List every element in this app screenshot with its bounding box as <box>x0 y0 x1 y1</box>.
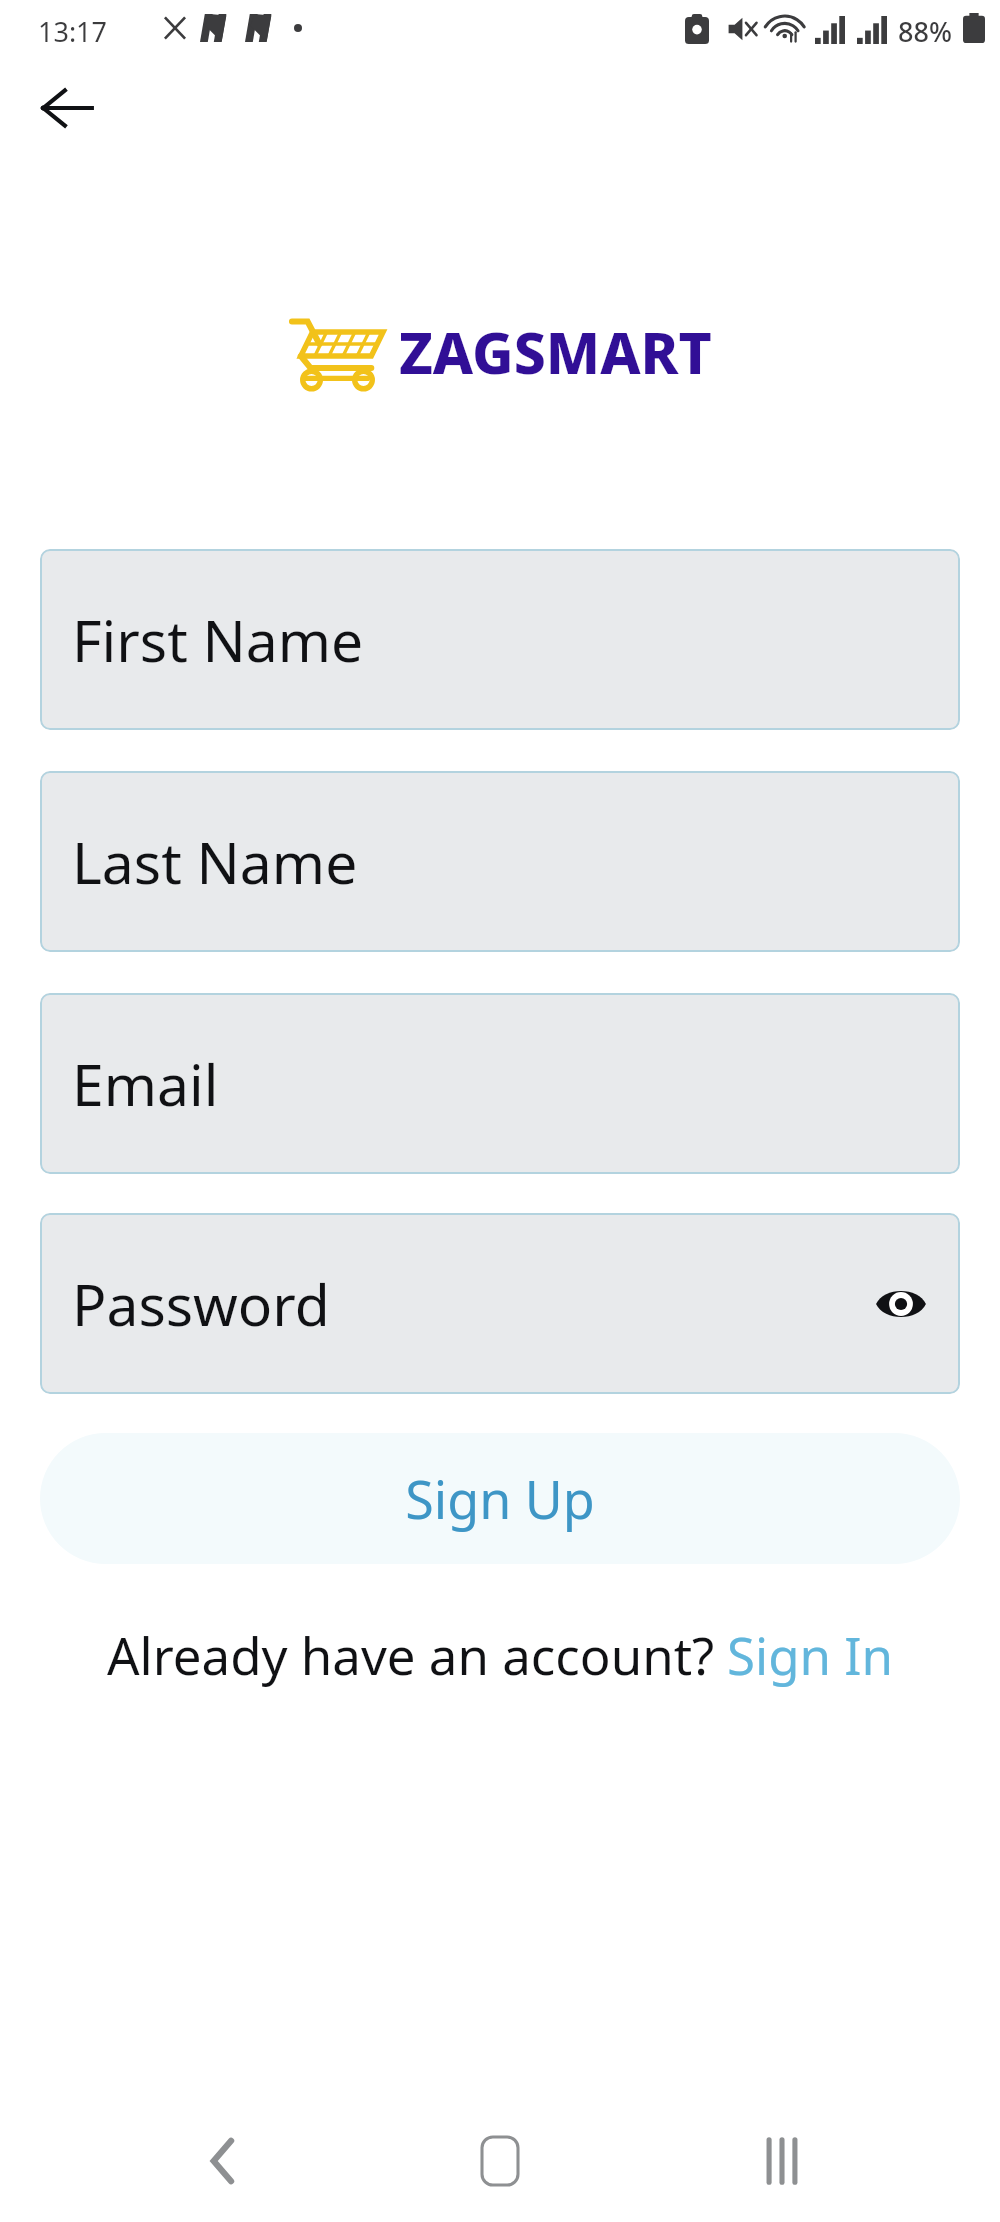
staticText: Password <box>72 1265 330 1343</box>
button[interactable]: Sign Up <box>40 1433 960 1564</box>
button[interactable]: Last Name <box>40 771 960 952</box>
button[interactable]: Show password <box>868 1271 934 1337</box>
staticText: Sign Up <box>405 1463 595 1534</box>
button[interactable]: First Name <box>40 549 960 730</box>
button[interactable]: Password <box>40 1213 960 1394</box>
staticText: 88% <box>898 13 952 50</box>
staticText: Last Name <box>72 823 358 901</box>
button[interactable]: Email <box>40 993 960 1174</box>
staticText: ZAGSMART <box>399 313 712 391</box>
staticText: 13:17 <box>38 13 108 50</box>
button[interactable]: Back <box>22 64 112 152</box>
button[interactable]: Recent apps <box>727 2106 837 2216</box>
button[interactable]: Sign In <box>727 1620 894 1689</box>
staticText: Already have an account? <box>107 1620 715 1689</box>
staticText: Email <box>72 1045 219 1123</box>
staticText: Sign In <box>727 1620 894 1689</box>
staticText: First Name <box>72 601 364 679</box>
button[interactable]: Back <box>167 2106 277 2216</box>
button[interactable]: Home <box>445 2106 555 2216</box>
